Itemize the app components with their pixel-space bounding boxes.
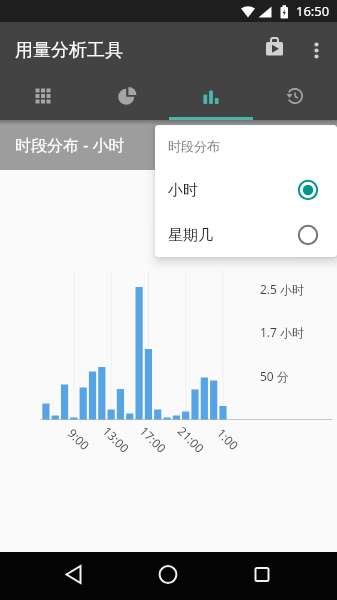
button[interactable] [52,554,96,598]
button[interactable] [85,78,169,120]
button[interactable]: 小时 [155,175,337,205]
button[interactable] [303,34,330,61]
staticText: 小时 [168,181,198,200]
staticText: 2.5 小时 [260,281,305,297]
staticText: 9:00 [65,425,93,453]
button[interactable] [240,554,284,598]
button[interactable] [253,78,337,120]
staticText: 1:00 [214,425,242,453]
button[interactable]: 星期几 [155,220,337,250]
staticText: 1.7 小时 [260,324,305,340]
button[interactable] [0,78,85,120]
button[interactable] [258,31,291,64]
staticText: 21:00 [175,423,208,456]
staticText: 17:00 [137,423,170,456]
button[interactable] [146,554,190,598]
staticText: 13:00 [100,423,133,456]
staticText: 用量分析工具 [15,39,123,62]
staticText: 星期几 [168,226,213,245]
button[interactable] [169,78,253,120]
staticText: 时段分布 [168,138,220,154]
staticText: 50 分 [260,368,289,384]
staticText: 16:50 [296,2,330,20]
staticText: 时段分布 - 小时 [15,134,125,156]
